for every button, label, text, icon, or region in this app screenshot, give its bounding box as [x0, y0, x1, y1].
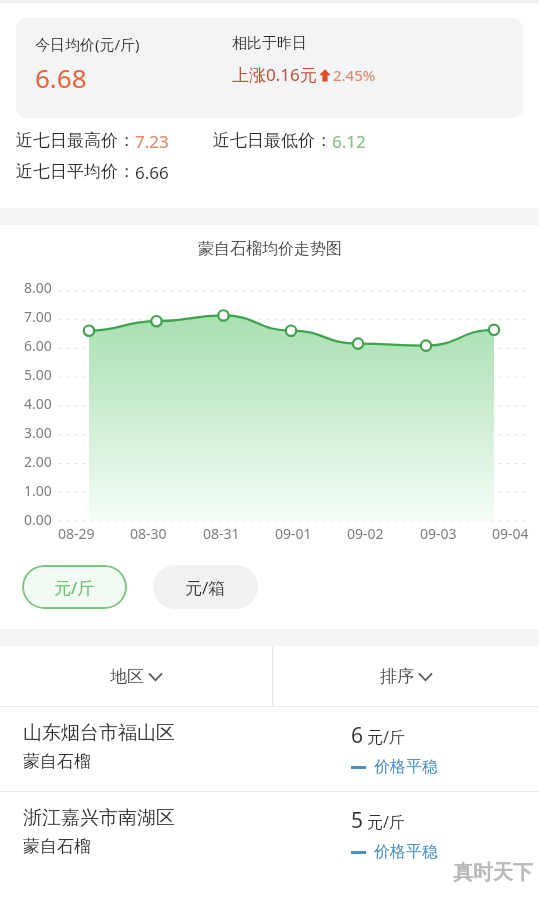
- staticText: 1.00: [24, 481, 52, 500]
- staticText: 5: [351, 806, 364, 835]
- staticText: 相比于昨日: [232, 34, 307, 53]
- button[interactable]: 山东烟台市福山区: [0, 707, 539, 791]
- staticText: 元/斤: [367, 726, 405, 748]
- staticText: 元/斤: [54, 576, 95, 599]
- staticText: 3.00: [24, 423, 52, 442]
- staticText: 元/箱: [185, 576, 226, 599]
- staticText: 近七日平均价：: [16, 161, 135, 182]
- staticText: 价格平稳: [374, 842, 438, 862]
- staticText: 5.00: [24, 365, 52, 384]
- staticText: 09-04: [492, 524, 529, 543]
- button[interactable]: 浙江嘉兴市南湖区: [0, 792, 539, 876]
- button[interactable]: 元/斤: [22, 565, 127, 609]
- staticText: 7.23: [135, 130, 169, 153]
- staticText: 2.45%: [333, 65, 376, 85]
- staticText: 今日均价(元/斤): [35, 34, 140, 54]
- staticText: 真时天下: [453, 860, 533, 885]
- button[interactable]: 排序: [273, 646, 539, 706]
- staticText: 山东烟台市福山区: [23, 721, 175, 745]
- staticText: 近七日最高价：: [16, 130, 135, 151]
- staticText: 浙江嘉兴市南湖区: [23, 806, 175, 830]
- staticText: 6: [351, 721, 364, 750]
- staticText: 08-29: [58, 524, 95, 543]
- staticText: 上涨0.16元: [232, 63, 317, 86]
- button[interactable]: 元/箱: [153, 565, 258, 609]
- staticText: 7.00: [24, 307, 52, 326]
- staticText: 元/斤: [367, 811, 405, 833]
- staticText: 蒙自石榴: [23, 836, 91, 857]
- staticText: 08-31: [203, 524, 240, 543]
- staticText: 2.00: [24, 452, 52, 471]
- staticText: 蒙自石榴均价走势图: [198, 239, 342, 259]
- staticText: 4.00: [24, 394, 52, 413]
- staticText: 09-01: [275, 524, 312, 543]
- staticText: 6.68: [35, 60, 87, 95]
- staticText: 地区: [110, 666, 144, 687]
- staticText: 6.12: [332, 130, 366, 153]
- staticText: 近七日最低价：: [213, 130, 332, 151]
- staticText: 价格平稳: [374, 757, 438, 777]
- button[interactable]: 地区: [0, 646, 272, 706]
- staticText: 08-30: [130, 524, 167, 543]
- button[interactable]: 今日均价(元/斤): [16, 18, 523, 118]
- staticText: 0.00: [24, 510, 52, 529]
- staticText: 排序: [380, 666, 414, 687]
- staticText: 09-02: [347, 524, 384, 543]
- staticText: 6.66: [135, 161, 169, 184]
- staticText: 6.00: [24, 336, 52, 355]
- staticText: 09-03: [420, 524, 457, 543]
- staticText: 8.00: [24, 278, 52, 297]
- staticText: 蒙自石榴: [23, 751, 91, 772]
